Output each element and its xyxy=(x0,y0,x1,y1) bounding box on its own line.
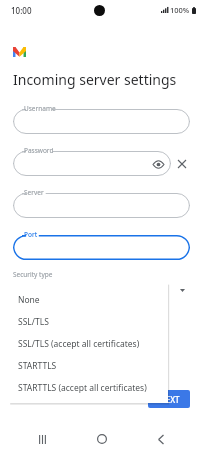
staticText: STARTTLS xyxy=(18,360,57,372)
staticText: Username xyxy=(24,104,56,113)
staticText: STARTTLS (accept all certificates) xyxy=(18,382,147,394)
button[interactable]: Show password xyxy=(150,156,166,172)
staticText: Server xyxy=(24,188,44,197)
button[interactable]: Back xyxy=(144,426,178,452)
button[interactable]: Port xyxy=(13,230,190,260)
staticText: NEXT xyxy=(159,394,180,405)
button[interactable]: STARTTLS xyxy=(9,355,168,377)
staticText: Password xyxy=(24,146,54,155)
button[interactable]: STARTTLS (accept all certificates) xyxy=(9,377,168,399)
button[interactable]: Username xyxy=(13,104,190,134)
button[interactable]: Server xyxy=(13,188,190,218)
button[interactable]: NEXT xyxy=(148,390,190,408)
button[interactable]: Security type dropdown xyxy=(176,284,188,296)
staticText: Port xyxy=(24,230,38,239)
staticText: None xyxy=(18,294,40,306)
staticText: SSL/TLS (accept all certificates) xyxy=(18,338,140,350)
button[interactable]: Recent apps xyxy=(25,426,59,452)
button[interactable]: SSL/TLS (accept all certificates) xyxy=(9,333,168,355)
staticText: Incoming server settings xyxy=(13,70,177,89)
button[interactable]: Home xyxy=(85,426,119,452)
staticText: SSL/TLS xyxy=(18,316,49,328)
button[interactable]: Password xyxy=(13,146,171,176)
button[interactable]: None xyxy=(9,289,168,311)
staticText: 100% xyxy=(170,5,190,15)
button[interactable]: Clear xyxy=(173,155,191,173)
button[interactable]: SSL/TLS xyxy=(9,311,168,333)
staticText: Security type xyxy=(13,270,53,279)
staticText: 10:00 xyxy=(11,5,32,16)
